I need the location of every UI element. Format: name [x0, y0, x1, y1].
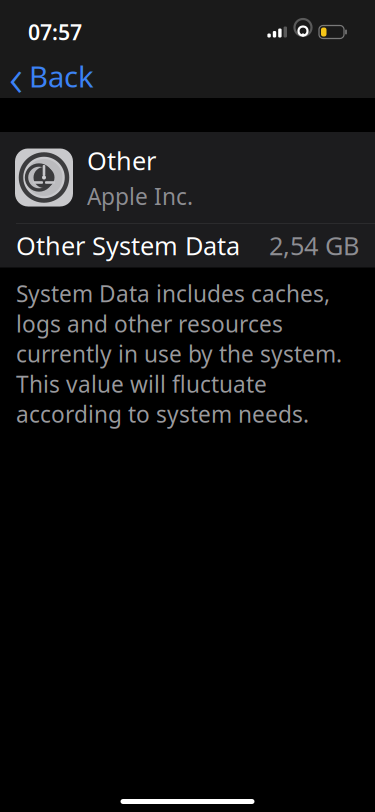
staticText: ‹ — [9, 41, 23, 111]
staticText: Back — [29, 56, 94, 95]
staticText: 2,54 GB — [269, 229, 359, 262]
staticText: Other — [87, 144, 156, 177]
staticText: 07:57 — [28, 18, 82, 46]
button[interactable]: Other System Data — [0, 223, 375, 267]
button[interactable]: ‹ — [0, 54, 108, 98]
staticText: Other System Data — [16, 229, 240, 262]
staticText: System Data includes caches, logs and ot… — [16, 278, 342, 429]
staticText: Apple Inc. — [87, 181, 193, 211]
